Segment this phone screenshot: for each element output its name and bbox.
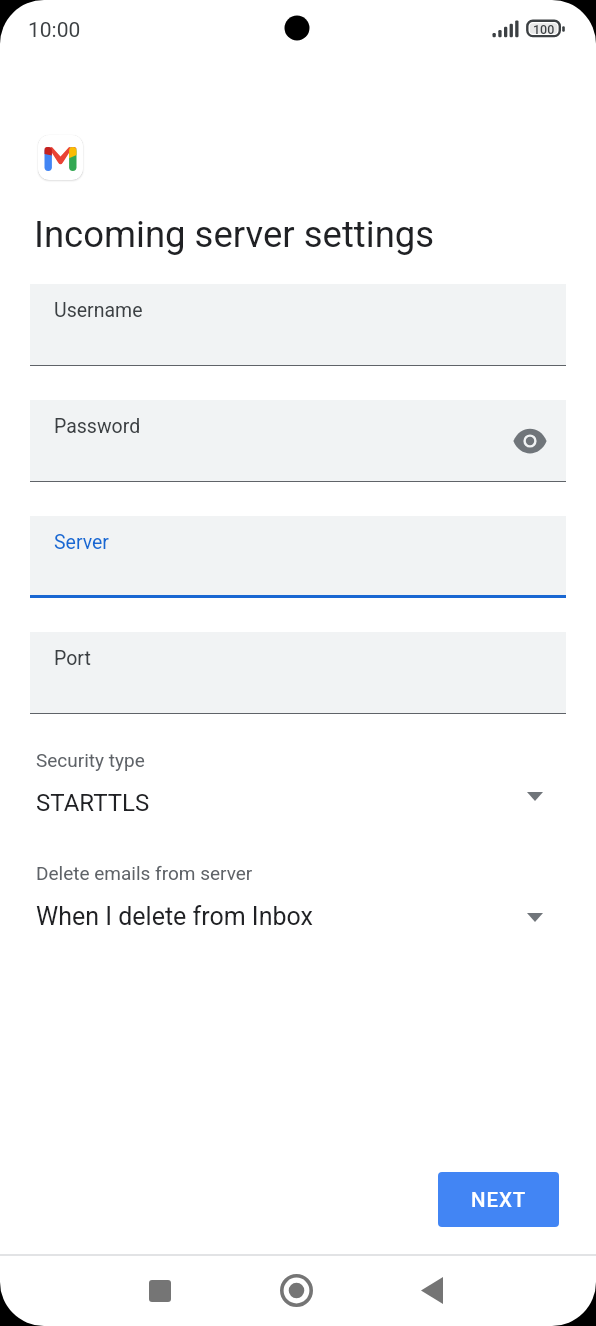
staticText: Password bbox=[54, 415, 141, 438]
staticText: Username bbox=[54, 299, 143, 322]
button[interactable]: NEXT bbox=[438, 1172, 559, 1227]
staticText: STARTTLS bbox=[36, 789, 150, 817]
button[interactable]: Delete emails from server bbox=[30, 858, 566, 938]
staticText: Port bbox=[54, 647, 91, 670]
button[interactable]: Recent apps bbox=[112, 1255, 208, 1326]
staticText: When I delete from Inbox bbox=[36, 902, 313, 931]
staticText: 10:00 bbox=[28, 18, 81, 43]
button[interactable]: Back bbox=[384, 1255, 480, 1326]
button[interactable]: Home bbox=[248, 1255, 344, 1326]
staticText: Delete emails from server bbox=[36, 862, 253, 884]
button[interactable]: Show password bbox=[509, 420, 551, 462]
staticText: Security type bbox=[36, 749, 145, 771]
button[interactable]: Username bbox=[30, 284, 566, 367]
staticText: NEXT bbox=[471, 1188, 527, 1212]
button[interactable]: Gmail bbox=[38, 135, 83, 180]
staticText: 100 bbox=[533, 22, 555, 37]
button[interactable]: Security type bbox=[30, 745, 566, 825]
button[interactable]: Port bbox=[30, 632, 566, 715]
button[interactable]: Password bbox=[30, 400, 566, 483]
button[interactable]: Server bbox=[30, 516, 566, 599]
staticText: Incoming server settings bbox=[34, 213, 435, 256]
staticText: Server bbox=[54, 531, 109, 554]
